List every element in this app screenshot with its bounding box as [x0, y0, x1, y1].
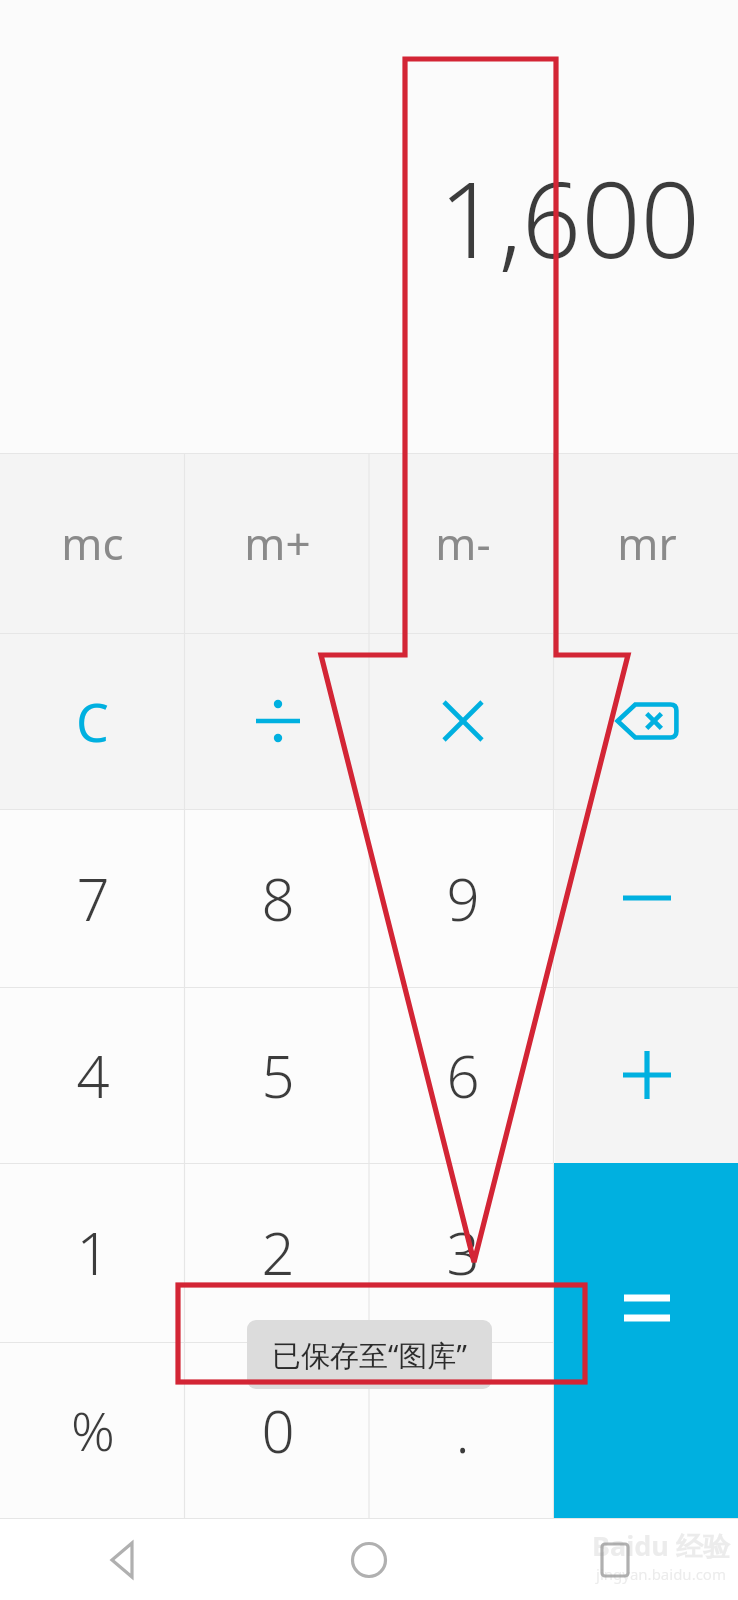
staticText: 已保存至“图库”	[272, 1335, 467, 1375]
button[interactable]: m+	[185, 453, 370, 633]
staticText: 8	[261, 859, 295, 938]
other: Minus	[619, 870, 675, 926]
button[interactable]: mr	[555, 453, 738, 633]
other: Backspace	[612, 686, 682, 756]
button[interactable]: 4	[0, 987, 185, 1163]
staticText: 3	[446, 1213, 480, 1292]
button[interactable]: Multiply	[370, 633, 555, 809]
other: Multiply	[435, 693, 491, 749]
button[interactable]: Recents	[492, 1519, 738, 1600]
button[interactable]: 8	[185, 809, 370, 987]
button[interactable]: Divide	[185, 633, 370, 809]
staticText: 0	[261, 1391, 295, 1470]
button[interactable]: m-	[370, 453, 555, 633]
button[interactable]: 3	[370, 1163, 555, 1342]
button[interactable]: C	[0, 633, 185, 809]
other: Divide	[250, 693, 306, 749]
staticText: Baidu 经验	[592, 1527, 730, 1564]
staticText: mc	[61, 513, 124, 573]
staticText: C	[76, 686, 109, 757]
button[interactable]: .	[370, 1342, 555, 1518]
button[interactable]: Backspace	[555, 633, 738, 809]
button[interactable]: Minus	[555, 809, 738, 987]
button[interactable]: 9	[370, 809, 555, 987]
staticText: 1	[76, 1213, 110, 1292]
staticText: 5	[261, 1036, 295, 1115]
staticText: 4	[76, 1036, 110, 1115]
button[interactable]: 2	[185, 1163, 370, 1342]
button[interactable]: 6	[370, 987, 555, 1163]
button[interactable]: 5	[185, 987, 370, 1163]
staticText: 9	[446, 859, 480, 938]
other: Plus	[619, 1047, 675, 1103]
button[interactable]: Home	[246, 1519, 492, 1600]
button[interactable]: mc	[0, 453, 185, 633]
button[interactable]: 1	[0, 1163, 185, 1342]
staticText: m-	[435, 513, 491, 573]
staticText: jingyan.baidu.com	[596, 1564, 726, 1584]
staticText: mr	[617, 513, 677, 573]
staticText: .	[455, 1391, 470, 1470]
button[interactable]: Back	[0, 1519, 246, 1600]
staticText: 2	[261, 1213, 295, 1292]
staticText: m+	[244, 513, 311, 573]
staticText: 6	[446, 1036, 480, 1115]
button[interactable]: 7	[0, 809, 185, 987]
staticText: 1,600	[439, 147, 700, 289]
button[interactable]: 0	[185, 1342, 370, 1518]
button[interactable]: Equals	[554, 1163, 738, 1518]
staticText: %	[71, 1393, 115, 1467]
button[interactable]: Plus	[555, 987, 738, 1163]
button[interactable]: %	[0, 1342, 185, 1518]
staticText: 7	[76, 859, 110, 938]
